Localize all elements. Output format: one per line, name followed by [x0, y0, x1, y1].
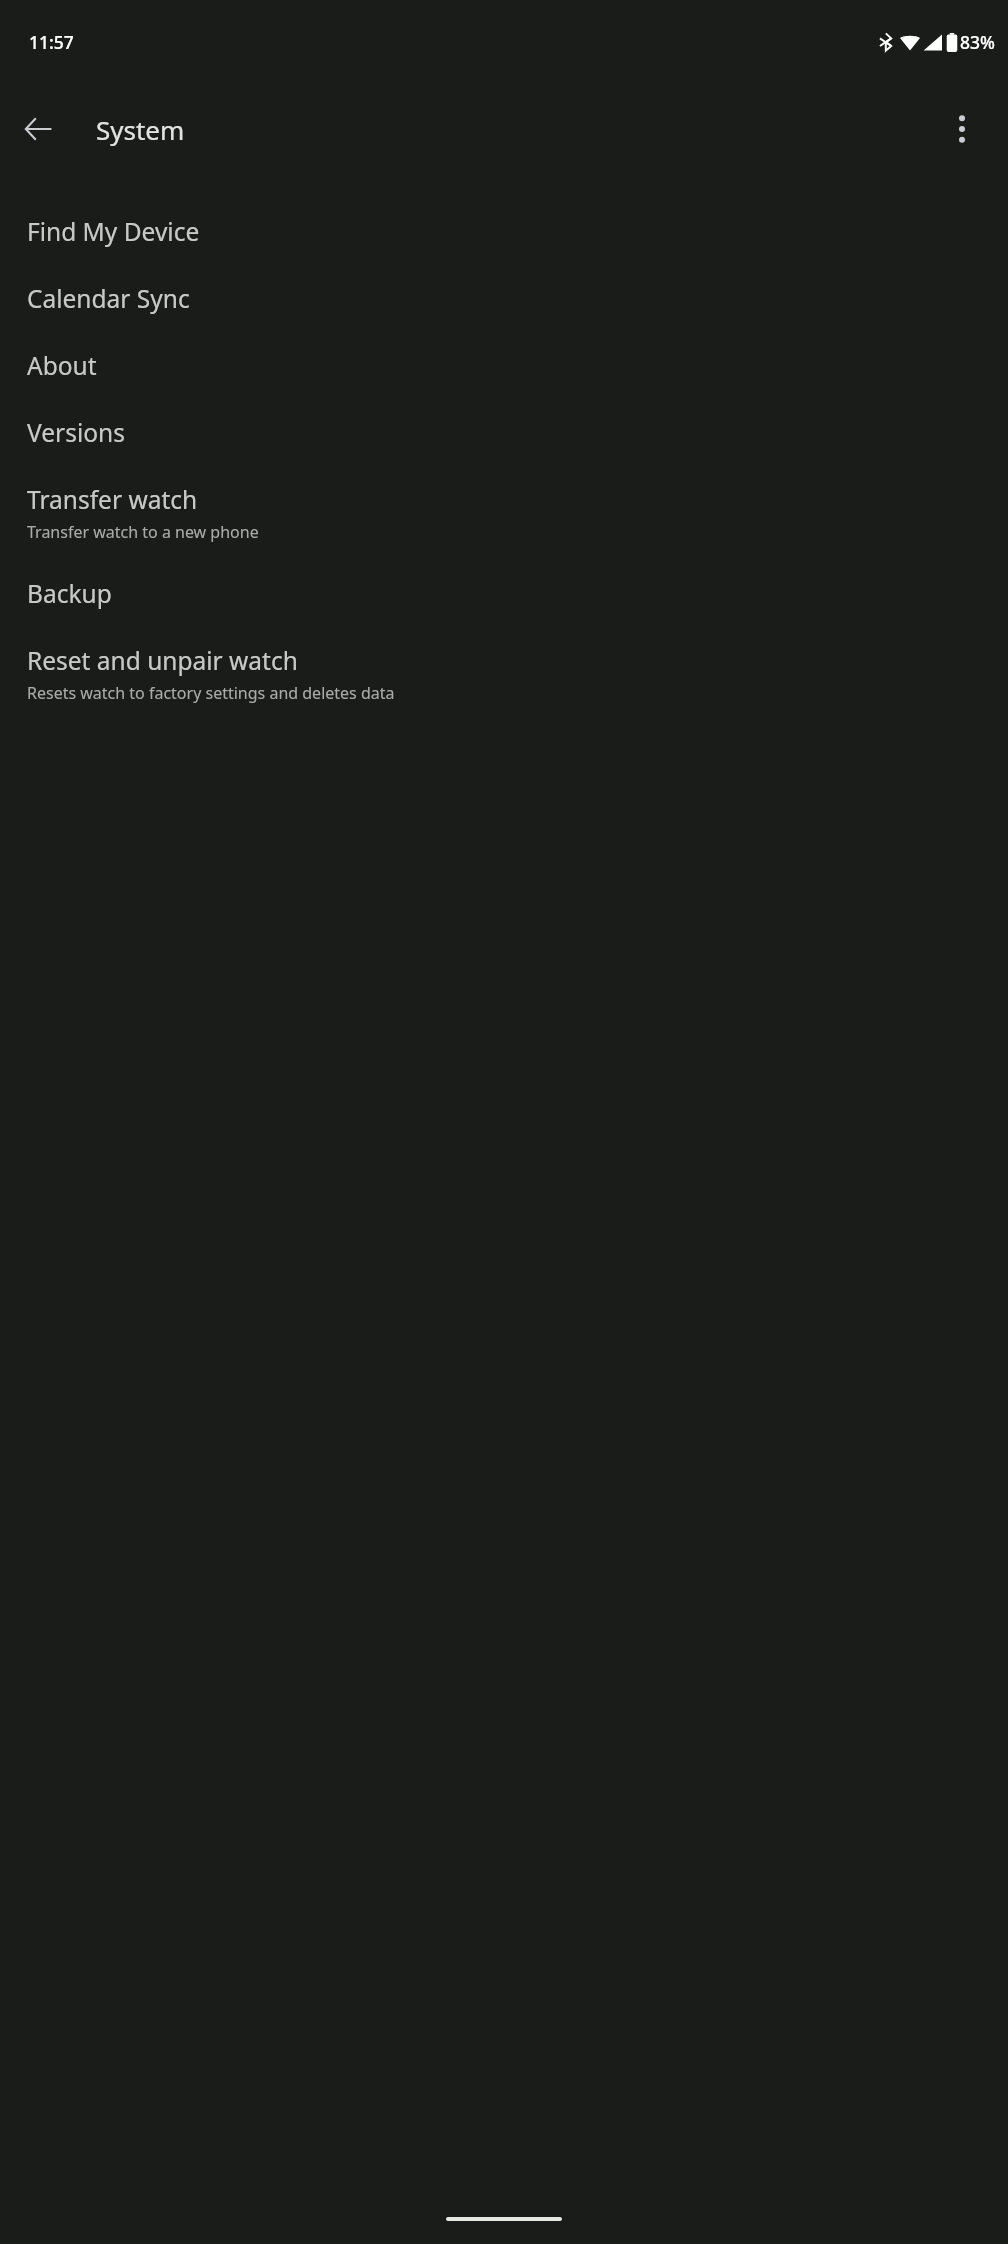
- staticText: About: [27, 349, 97, 382]
- staticText: Resets watch to factory settings and del…: [27, 682, 395, 704]
- staticText: 83%: [960, 30, 995, 54]
- button[interactable]: Reset and unpair watch: [0, 627, 1008, 721]
- button[interactable]: Back: [14, 105, 62, 153]
- button[interactable]: About: [0, 332, 1008, 399]
- button[interactable]: Calendar Sync: [0, 265, 1008, 332]
- button[interactable]: More options: [940, 107, 984, 151]
- staticText: Reset and unpair watch: [27, 644, 298, 677]
- staticText: Backup: [27, 577, 112, 610]
- staticText: Versions: [27, 416, 125, 449]
- button[interactable]: Versions: [0, 399, 1008, 466]
- staticText: 11:57: [29, 30, 74, 54]
- staticText: Transfer watch: [27, 483, 198, 516]
- button[interactable]: Find My Device: [0, 198, 1008, 265]
- staticText: Calendar Sync: [27, 282, 190, 315]
- button[interactable]: Transfer watch: [0, 466, 1008, 560]
- button[interactable]: Backup: [0, 560, 1008, 627]
- staticText: Transfer watch to a new phone: [27, 521, 259, 543]
- staticText: Find My Device: [27, 215, 200, 248]
- staticText: System: [96, 112, 185, 147]
